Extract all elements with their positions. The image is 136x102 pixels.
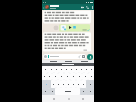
button[interactable] (80, 88, 86, 95)
button[interactable] (61, 80, 66, 88)
button[interactable] (55, 88, 80, 95)
button[interactable] (56, 80, 61, 88)
button[interactable] (42, 66, 48, 73)
button[interactable] (86, 80, 94, 88)
button[interactable] (66, 80, 71, 88)
button[interactable] (42, 73, 47, 80)
button[interactable] (79, 60, 89, 63)
button[interactable]: Contact photo (45, 5, 49, 9)
button[interactable] (48, 60, 58, 63)
button[interactable] (82, 73, 88, 80)
button[interactable] (86, 88, 94, 95)
button[interactable]: Record voice message (87, 54, 93, 60)
button[interactable] (52, 73, 58, 80)
button[interactable] (42, 80, 51, 88)
button[interactable] (69, 66, 74, 73)
button[interactable] (64, 66, 69, 73)
button[interactable] (51, 80, 56, 88)
button[interactable] (84, 66, 89, 73)
button[interactable]: Recent apps (80, 96, 85, 101)
button[interactable] (54, 66, 59, 73)
button[interactable] (43, 54, 86, 59)
button[interactable] (81, 80, 86, 88)
button[interactable] (42, 88, 49, 95)
button[interactable] (58, 73, 64, 80)
button[interactable] (48, 66, 54, 73)
button[interactable] (64, 73, 70, 80)
button[interactable] (49, 88, 55, 95)
button[interactable]: Back (51, 96, 56, 101)
button[interactable] (76, 80, 81, 88)
button[interactable] (47, 73, 52, 80)
button[interactable] (79, 66, 84, 73)
button[interactable]: More options (90, 5, 94, 9)
button[interactable] (74, 66, 79, 73)
button[interactable] (71, 80, 76, 88)
button[interactable]: Video call (80, 5, 85, 10)
button[interactable]: Home (66, 96, 71, 101)
button[interactable]: Back (42, 6, 45, 9)
button[interactable] (88, 73, 94, 80)
button[interactable] (70, 73, 76, 80)
button[interactable] (76, 73, 82, 80)
button[interactable] (89, 66, 94, 73)
button[interactable]: Voice call (85, 5, 90, 10)
button[interactable] (63, 60, 73, 63)
button[interactable] (59, 66, 64, 73)
